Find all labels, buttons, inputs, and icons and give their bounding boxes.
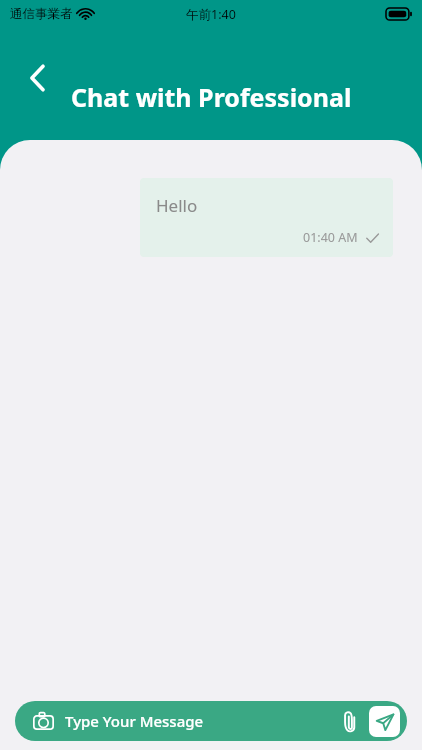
staticText: 午前1:40 — [186, 6, 236, 23]
staticText: Chat with Professional — [71, 80, 352, 114]
staticText: Hello — [156, 194, 198, 217]
staticText: Type Your Message — [65, 711, 204, 731]
button[interactable]: Camera — [15, 701, 407, 741]
button[interactable]: Hello — [140, 178, 393, 257]
button[interactable]: Back — [14, 54, 62, 102]
staticText: 通信事業者 — [10, 6, 73, 22]
button[interactable]: Attach file — [334, 706, 364, 736]
staticText: 01:40 AM — [303, 229, 358, 246]
button[interactable]: Send — [369, 706, 400, 737]
button[interactable]: Camera — [29, 707, 57, 735]
